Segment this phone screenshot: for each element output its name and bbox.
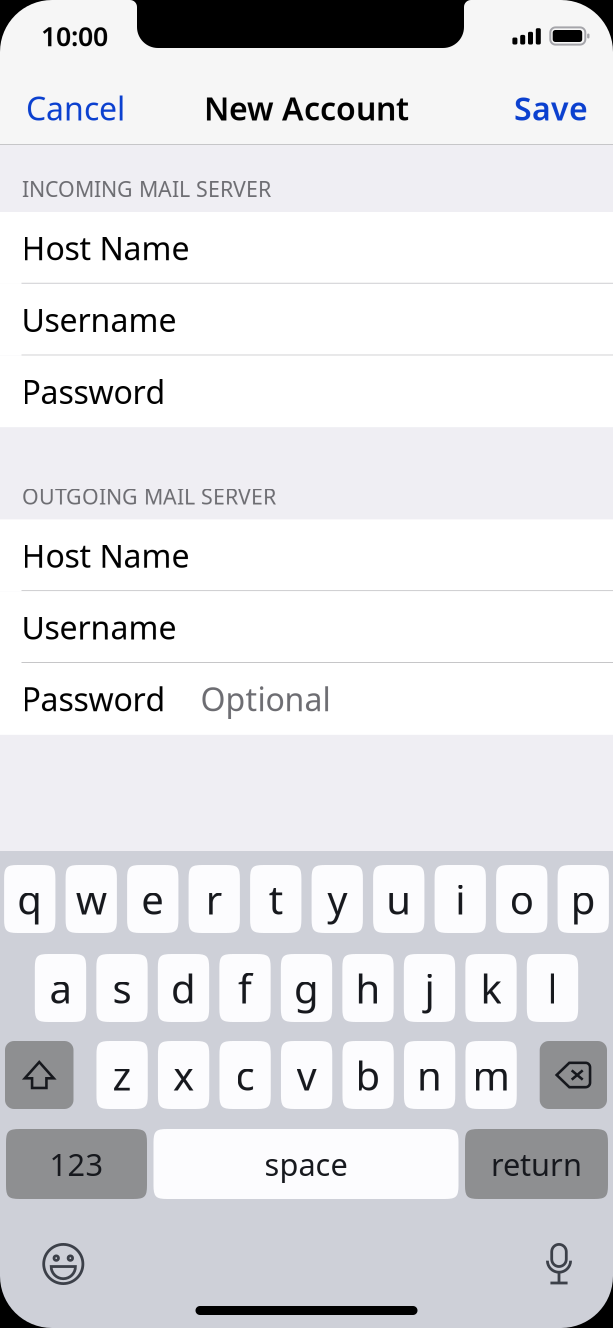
button[interactable]: b — [342, 1041, 394, 1109]
button[interactable]: Host Name — [0, 519, 613, 591]
button[interactable]: t — [250, 865, 301, 933]
button[interactable]: g — [281, 954, 332, 1022]
button[interactable]: Host Name — [0, 212, 613, 284]
staticText: m — [473, 1048, 510, 1101]
button[interactable]: p — [558, 865, 609, 933]
button[interactable]: Emoji keyboard — [32, 1233, 94, 1295]
button[interactable]: s — [96, 954, 148, 1022]
staticText: Password — [21, 370, 165, 413]
button[interactable]: y — [312, 865, 363, 933]
button[interactable]: e — [127, 865, 178, 933]
button[interactable]: Password — [0, 356, 613, 427]
staticText: s — [112, 961, 131, 1014]
staticText: f — [238, 961, 252, 1014]
button[interactable]: Password — [0, 663, 613, 735]
staticText: 10:00 — [41, 18, 108, 54]
staticText: e — [141, 872, 164, 925]
button[interactable]: Shift — [5, 1041, 73, 1109]
staticText: h — [355, 961, 380, 1014]
staticText: Username — [21, 606, 176, 648]
staticText: y — [327, 872, 347, 925]
staticText: n — [417, 1048, 442, 1101]
button[interactable]: l — [527, 954, 578, 1022]
staticText: space — [264, 1144, 347, 1184]
button[interactable]: d — [158, 954, 209, 1022]
button[interactable]: k — [465, 954, 517, 1022]
button[interactable]: space — [153, 1129, 458, 1199]
staticText: a — [49, 961, 71, 1014]
button[interactable]: r — [189, 865, 240, 933]
button[interactable]: z — [96, 1041, 148, 1109]
button[interactable]: f — [219, 954, 271, 1022]
staticText: l — [547, 961, 557, 1014]
staticText: Save — [514, 87, 588, 129]
staticText: Host Name — [21, 227, 189, 269]
button[interactable]: x — [158, 1041, 209, 1109]
button[interactable]: Save — [498, 74, 613, 142]
button[interactable]: h — [342, 954, 394, 1022]
button[interactable]: Cancel — [0, 74, 141, 142]
button[interactable]: w — [66, 865, 117, 933]
button[interactable]: n — [404, 1041, 455, 1109]
staticText: k — [480, 961, 501, 1014]
button[interactable]: Username — [0, 284, 613, 356]
button[interactable]: u — [373, 865, 424, 933]
button[interactable]: i — [435, 865, 486, 933]
button[interactable]: 123 — [6, 1129, 147, 1199]
staticText: t — [269, 872, 283, 925]
staticText: j — [424, 961, 434, 1014]
button[interactable]: j — [404, 954, 455, 1022]
staticText: v — [297, 1048, 317, 1101]
button[interactable]: a — [35, 954, 86, 1022]
staticText: 123 — [49, 1144, 103, 1184]
button[interactable]: q — [4, 865, 55, 933]
staticText: return — [491, 1144, 582, 1184]
staticText: b — [356, 1048, 381, 1101]
button[interactable]: Delete — [540, 1041, 607, 1109]
staticText: o — [510, 872, 534, 925]
staticText: r — [206, 872, 223, 925]
staticText: g — [294, 961, 319, 1014]
button[interactable]: m — [465, 1041, 517, 1109]
staticText: New Account — [204, 87, 409, 129]
staticText: INCOMING MAIL SERVER — [22, 175, 271, 203]
staticText: u — [386, 872, 411, 925]
staticText: Cancel — [26, 87, 125, 129]
button[interactable]: return — [465, 1129, 608, 1199]
staticText: OUTGOING MAIL SERVER — [22, 482, 276, 510]
button[interactable]: o — [496, 865, 547, 933]
staticText: c — [236, 1048, 255, 1101]
staticText: i — [455, 872, 465, 925]
staticText: Password — [21, 678, 165, 720]
button[interactable]: Dictation — [536, 1233, 582, 1295]
staticText: x — [173, 1048, 194, 1101]
staticText: Optional — [200, 678, 330, 720]
staticText: Host Name — [21, 534, 189, 577]
staticText: d — [171, 961, 196, 1014]
staticText: w — [76, 872, 107, 925]
staticText: q — [17, 872, 42, 925]
button[interactable]: c — [219, 1041, 271, 1109]
button[interactable]: v — [281, 1041, 332, 1109]
button[interactable]: Username — [0, 591, 613, 663]
staticText: Username — [21, 298, 176, 341]
staticText: p — [571, 872, 596, 925]
staticText: z — [113, 1048, 132, 1101]
